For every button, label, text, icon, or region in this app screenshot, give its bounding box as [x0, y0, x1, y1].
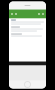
button[interactable]: Back — [14, 13, 18, 15]
button[interactable]: More — [41, 13, 45, 15]
button[interactable]: Menu — [10, 13, 14, 15]
button[interactable]: Search — [37, 13, 41, 15]
